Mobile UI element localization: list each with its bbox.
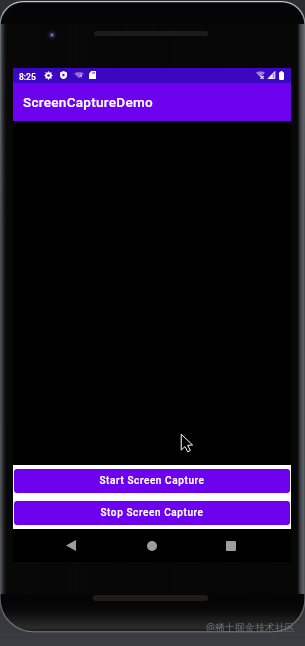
staticText: ScreenCaptureDemo	[23, 94, 154, 110]
button[interactable]: Home	[132, 529, 172, 562]
staticText: Start Screen Capture	[99, 475, 205, 487]
button[interactable]: Back	[51, 529, 91, 562]
staticText: @稀土掘金技术社区	[206, 620, 295, 634]
button[interactable]: Start Screen Capture	[14, 469, 290, 493]
staticText: 8:25	[19, 72, 36, 82]
button[interactable]: Stop Screen Capture	[14, 501, 290, 525]
button[interactable]: Recent apps	[211, 529, 251, 562]
staticText: Stop Screen Capture	[100, 507, 204, 519]
